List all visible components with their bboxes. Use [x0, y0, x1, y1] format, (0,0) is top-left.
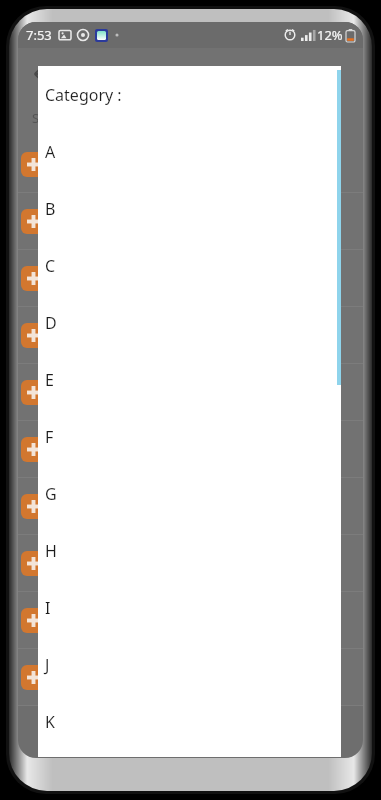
staticText: Category : [45, 84, 122, 106]
staticText: B [45, 198, 56, 220]
button[interactable]: D [38, 294, 341, 351]
staticText: I [45, 597, 51, 619]
staticText: C [45, 255, 56, 277]
button[interactable]: E [38, 351, 341, 408]
button[interactable]: H [38, 522, 341, 579]
button[interactable]: J [38, 636, 341, 693]
button[interactable] [18, 307, 363, 364]
button[interactable] [18, 250, 363, 307]
button[interactable] [18, 364, 363, 421]
button[interactable]: G [38, 465, 341, 522]
button[interactable]: F [38, 408, 341, 465]
staticText: 7:53 [26, 26, 52, 44]
button[interactable] [18, 478, 363, 535]
staticText: H [45, 540, 57, 562]
button[interactable]: Back [22, 52, 66, 96]
button[interactable] [18, 535, 363, 592]
staticText: 12% [317, 26, 343, 44]
button[interactable]: C [38, 237, 341, 294]
staticText: Search [32, 109, 74, 127]
button[interactable] [18, 193, 363, 250]
button[interactable]: A [38, 123, 341, 180]
button[interactable] [18, 649, 363, 706]
staticText: F [45, 426, 54, 448]
button[interactable]: B [38, 180, 341, 237]
staticText: A [45, 141, 56, 163]
button[interactable] [18, 136, 363, 193]
button[interactable]: I [38, 579, 341, 636]
staticText: D [45, 312, 57, 334]
staticText: G [45, 483, 57, 505]
button[interactable] [18, 592, 363, 649]
staticText: K [45, 711, 55, 733]
staticText: E [45, 369, 54, 391]
staticText: J [45, 654, 50, 676]
button[interactable] [18, 421, 363, 478]
button[interactable]: K [38, 693, 341, 750]
